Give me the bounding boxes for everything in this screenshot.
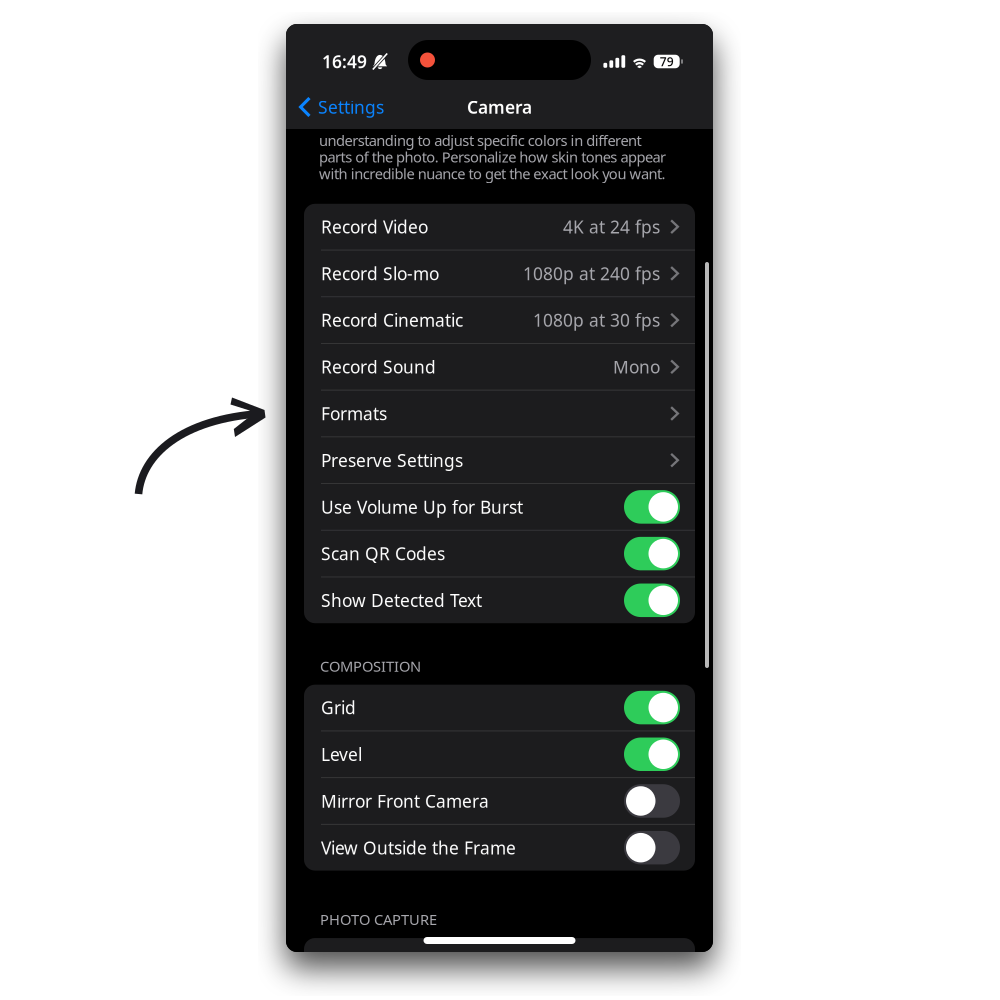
staticText: Use Volume Up for Burst bbox=[321, 495, 523, 518]
staticText: 16:49 bbox=[322, 50, 367, 73]
staticText: with incredible nuance to get the exact … bbox=[319, 164, 666, 183]
button[interactable]: View Outside the Frame bbox=[624, 831, 680, 864]
staticText: Grid bbox=[321, 696, 356, 719]
staticText: Preserve Settings bbox=[321, 449, 463, 472]
button[interactable]: Scan QR Codes bbox=[624, 537, 680, 570]
staticText: Record Slo-mo bbox=[321, 262, 439, 285]
button[interactable]: Show Detected Text bbox=[624, 583, 680, 617]
staticText: Record Cinematic bbox=[321, 309, 463, 332]
staticText: Photographic Styles bbox=[321, 949, 482, 972]
button[interactable]: Formats bbox=[304, 391, 695, 436]
staticText: Mirror Front Camera bbox=[321, 789, 489, 812]
staticText: Settings bbox=[318, 95, 384, 118]
staticText: 79 bbox=[660, 53, 674, 69]
button[interactable]: Use Volume Up for Burst bbox=[624, 490, 680, 524]
staticText: understanding to adjust specific colors … bbox=[319, 131, 641, 150]
staticText: Show Detected Text bbox=[321, 589, 482, 612]
button[interactable]: Record Slo-mo bbox=[304, 250, 695, 296]
button[interactable]: Mirror Front Camera bbox=[624, 784, 680, 818]
button[interactable]: Record Cinematic bbox=[304, 297, 695, 343]
staticText: 1080p at 240 fps bbox=[523, 262, 660, 285]
staticText: 1080p at 30 fps bbox=[533, 309, 660, 332]
staticText: Camera bbox=[467, 95, 532, 118]
staticText: PHOTO CAPTURE bbox=[320, 910, 437, 929]
staticText: Scan QR Codes bbox=[321, 542, 445, 565]
staticText: parts of the photo. Personalize how skin… bbox=[319, 147, 666, 167]
button[interactable]: Photographic Styles bbox=[304, 938, 695, 984]
button[interactable]: Level bbox=[624, 737, 680, 771]
button[interactable]: Preserve Settings bbox=[304, 437, 695, 483]
staticText: Record Sound bbox=[321, 355, 436, 378]
button[interactable]: Record Video bbox=[304, 204, 695, 250]
button[interactable]: Record Sound bbox=[304, 344, 695, 390]
staticText: Level bbox=[321, 743, 362, 766]
button[interactable]: Settings bbox=[286, 88, 384, 125]
staticText: Record Video bbox=[321, 215, 428, 238]
staticText: Formats bbox=[321, 402, 387, 425]
staticText: 4K at 24 fps bbox=[563, 215, 660, 238]
staticText: View Outside the Frame bbox=[321, 836, 516, 859]
staticText: Mono bbox=[613, 355, 660, 378]
staticText: COMPOSITION bbox=[320, 656, 421, 676]
button[interactable]: Grid bbox=[624, 691, 680, 724]
